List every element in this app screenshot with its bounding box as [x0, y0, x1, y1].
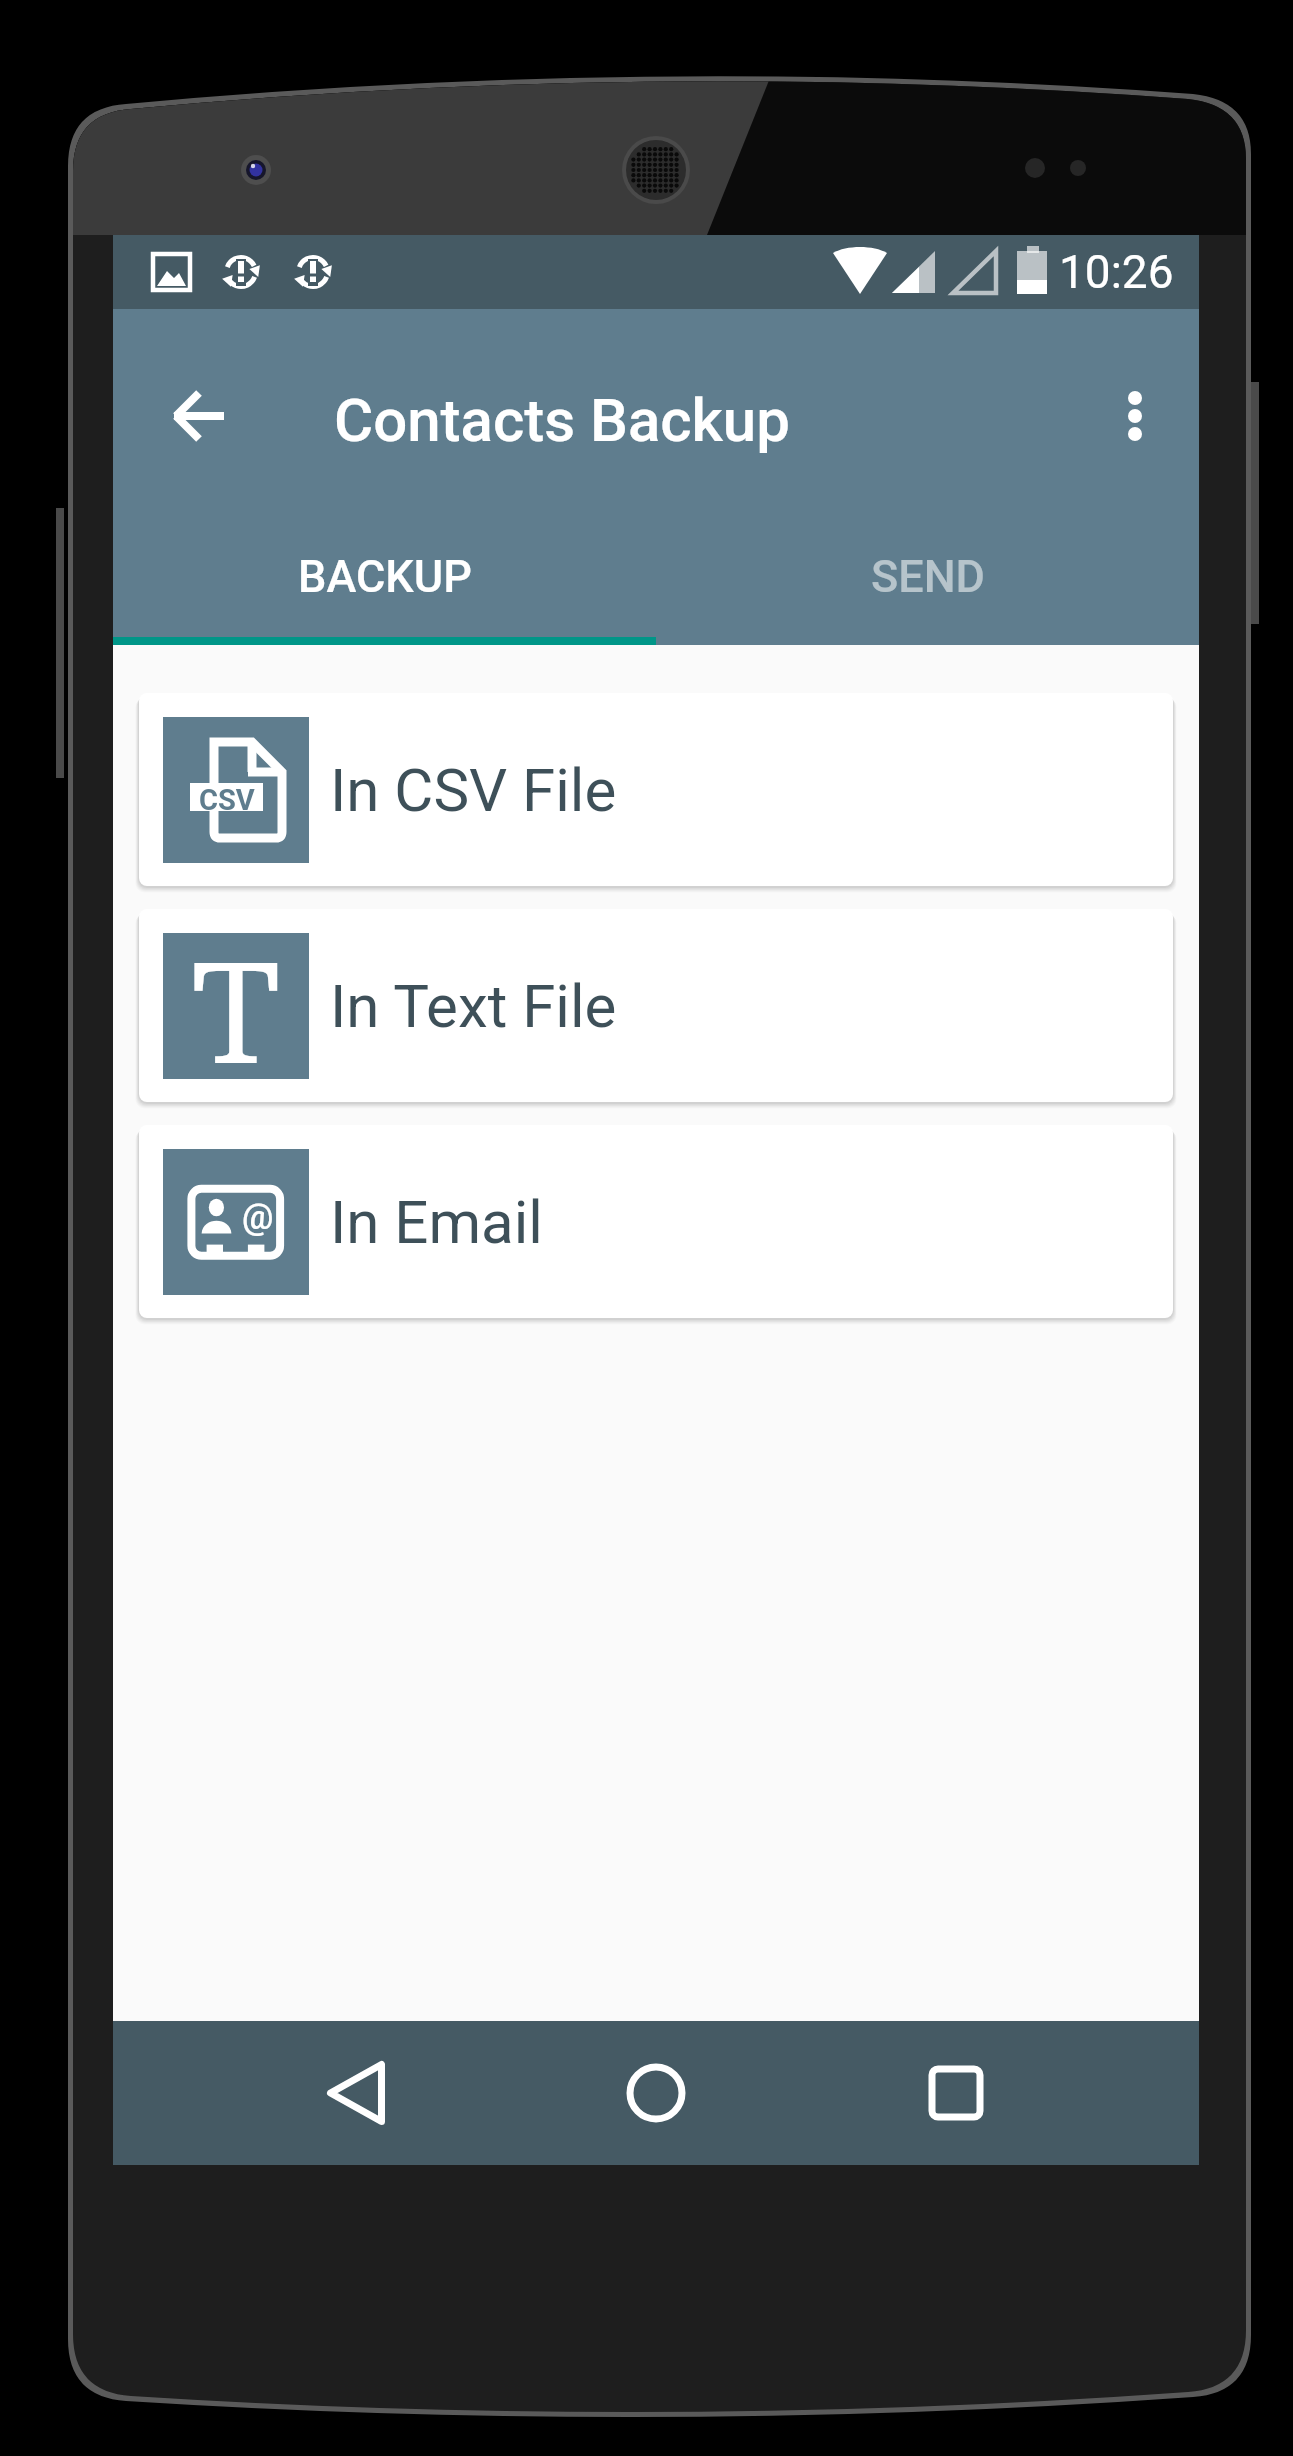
- button[interactable]: @: [139, 1125, 1173, 1318]
- staticText: 10:26: [1059, 245, 1174, 299]
- staticText: In CSV File: [330, 755, 617, 825]
- staticText: BACKUP: [298, 550, 472, 603]
- staticText: In Text File: [330, 971, 617, 1041]
- staticText: SEND: [871, 550, 985, 603]
- staticText: CSV: [199, 783, 255, 811]
- button[interactable]: Back: [311, 2048, 401, 2138]
- staticText: In Email: [330, 1187, 543, 1257]
- button[interactable]: More options: [1099, 380, 1171, 452]
- staticText: @: [242, 1197, 274, 1237]
- button[interactable]: Navigate up: [163, 380, 235, 452]
- button[interactable]: BACKUP: [113, 522, 656, 637]
- button[interactable]: CSV: [139, 693, 1173, 886]
- button[interactable]: Recents: [911, 2048, 1001, 2138]
- staticText: Contacts Backup: [334, 385, 790, 455]
- button[interactable]: T: [139, 909, 1173, 1102]
- button[interactable]: Home: [611, 2048, 701, 2138]
- staticText: T: [189, 933, 283, 1079]
- button[interactable]: SEND: [656, 522, 1199, 637]
